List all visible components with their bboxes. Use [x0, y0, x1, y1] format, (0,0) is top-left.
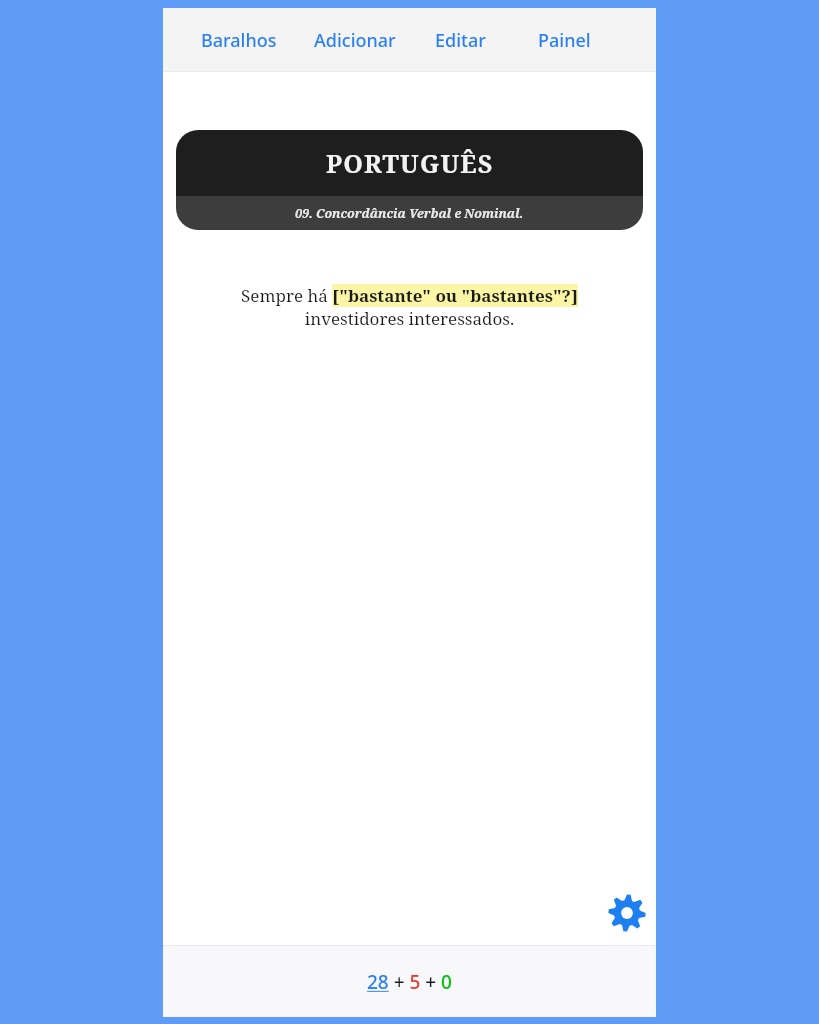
button[interactable]: Adicionar [312, 22, 398, 59]
staticText: 28 + 5 + 0 [367, 969, 452, 995]
button[interactable]: 28 + 5 + 0 [163, 946, 656, 1017]
button[interactable]: Settings [603, 889, 651, 937]
staticText: 09. Concordância Verbal e Nominal. [295, 205, 524, 222]
button[interactable]: Painel [536, 22, 593, 59]
staticText: Baralhos [201, 28, 277, 53]
staticText: PORTUGUÊS [326, 146, 494, 180]
staticText: Sempre há ["bastante" ou "bastantes"?] i… [241, 284, 578, 330]
staticText: Painel [538, 28, 591, 53]
button[interactable]: Baralhos [199, 22, 279, 59]
button[interactable]: Sempre há ["bastante" ou "bastantes"?] i… [176, 261, 643, 353]
staticText: Editar [435, 28, 486, 53]
staticText: Adicionar [314, 28, 396, 53]
button[interactable]: PORTUGUÊS [176, 130, 643, 230]
button[interactable]: Editar [433, 22, 488, 59]
